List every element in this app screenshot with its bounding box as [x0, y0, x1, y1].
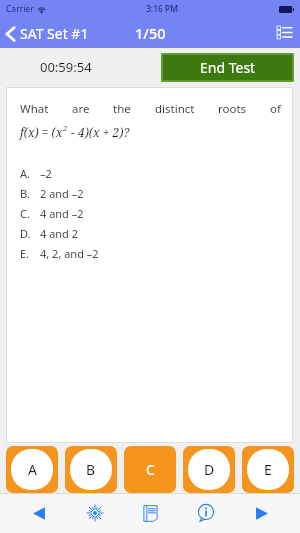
- staticText: 00:59:54: [40, 58, 92, 76]
- staticText: D.: [20, 226, 40, 241]
- staticText: 2 and –2: [40, 186, 84, 201]
- button[interactable]: D: [183, 446, 235, 493]
- staticText: 3:16 PM: [146, 3, 179, 15]
- staticText: 4, 2, and –2: [40, 246, 99, 261]
- staticText: What: [20, 101, 49, 117]
- staticText: of: [270, 101, 281, 117]
- staticText: 4 and –2: [40, 206, 84, 221]
- staticText: 1/50: [135, 23, 166, 43]
- staticText: E: [264, 460, 272, 479]
- staticText: C.: [20, 206, 40, 221]
- staticText: distinct: [155, 101, 195, 117]
- button[interactable]: Previous: [22, 496, 56, 530]
- staticText: 2: [63, 123, 68, 133]
- button[interactable]: SAT Set #1: [0, 22, 95, 45]
- staticText: − 4)(x + 2)?: [68, 124, 130, 140]
- button[interactable]: C: [124, 446, 176, 493]
- button[interactable]: Info: [189, 496, 223, 530]
- staticText: B: [86, 460, 96, 479]
- button[interactable]: A: [6, 446, 58, 493]
- button[interactable]: Next: [244, 496, 278, 530]
- staticText: E.: [20, 246, 40, 261]
- staticText: the: [113, 101, 131, 117]
- staticText: Carrier: [6, 3, 34, 15]
- staticText: f(x) = (x: [20, 124, 63, 140]
- button[interactable]: Notes: [133, 496, 167, 530]
- button[interactable]: B: [65, 446, 117, 493]
- staticText: A.: [20, 166, 40, 181]
- staticText: C: [146, 460, 155, 479]
- button[interactable]: Hint: [78, 496, 112, 530]
- staticText: roots: [218, 101, 247, 117]
- staticText: B.: [20, 186, 40, 201]
- button[interactable]: End Test: [161, 53, 294, 82]
- staticText: D: [204, 460, 215, 479]
- staticText: are: [72, 101, 90, 117]
- staticText: SAT Set #1: [20, 24, 89, 43]
- staticText: End Test: [200, 58, 256, 77]
- button[interactable]: Question list: [269, 22, 300, 44]
- staticText: A: [28, 460, 37, 479]
- staticText: –2: [40, 166, 52, 181]
- staticText: 4 and 2: [40, 226, 79, 241]
- button[interactable]: E: [242, 446, 294, 493]
